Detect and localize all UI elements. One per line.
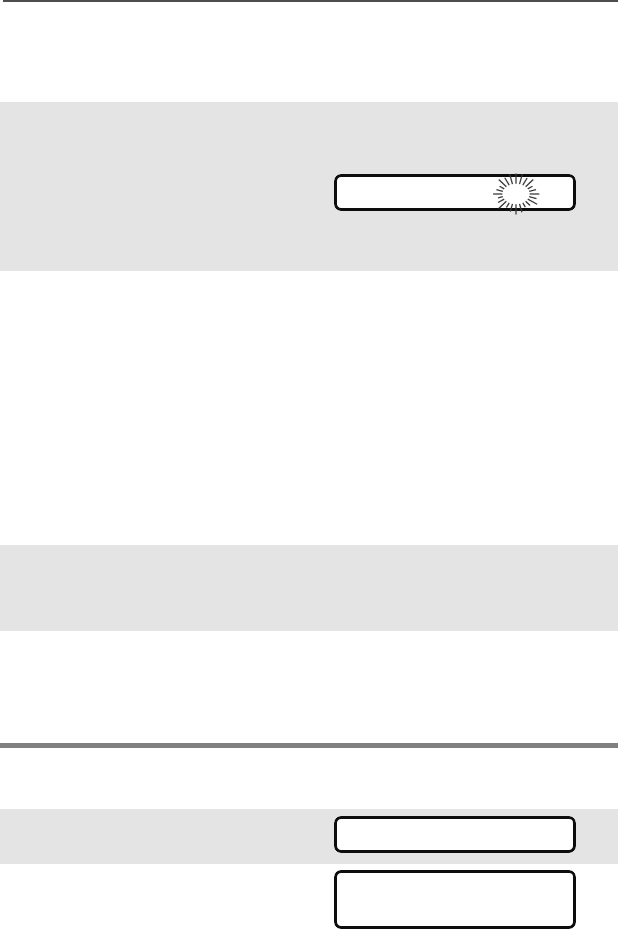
- button[interactable]: Search field: [334, 174, 576, 211]
- button[interactable]: Text field: [334, 816, 576, 853]
- button[interactable]: Footer row: [0, 809, 618, 864]
- button[interactable]: Message field: [334, 870, 576, 929]
- button[interactable]: Highlighted row: [0, 102, 618, 271]
- other: Loading: [486, 164, 546, 224]
